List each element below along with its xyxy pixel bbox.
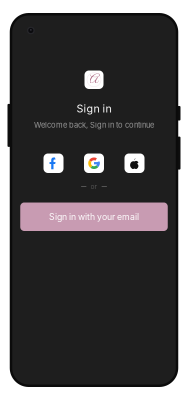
staticText: Sign in with your email (49, 211, 139, 222)
button[interactable]: Sign in with Facebook (43, 153, 63, 173)
staticText: or (90, 182, 97, 191)
button[interactable]: Sign in with Apple (124, 153, 144, 173)
staticText: A (89, 72, 98, 87)
button[interactable]: Sign in with Google (84, 153, 104, 173)
staticText: Welcome back, Sign in to continue (34, 120, 154, 129)
staticText: Sign in (76, 102, 111, 115)
button[interactable]: Sign in with your email (20, 202, 168, 231)
